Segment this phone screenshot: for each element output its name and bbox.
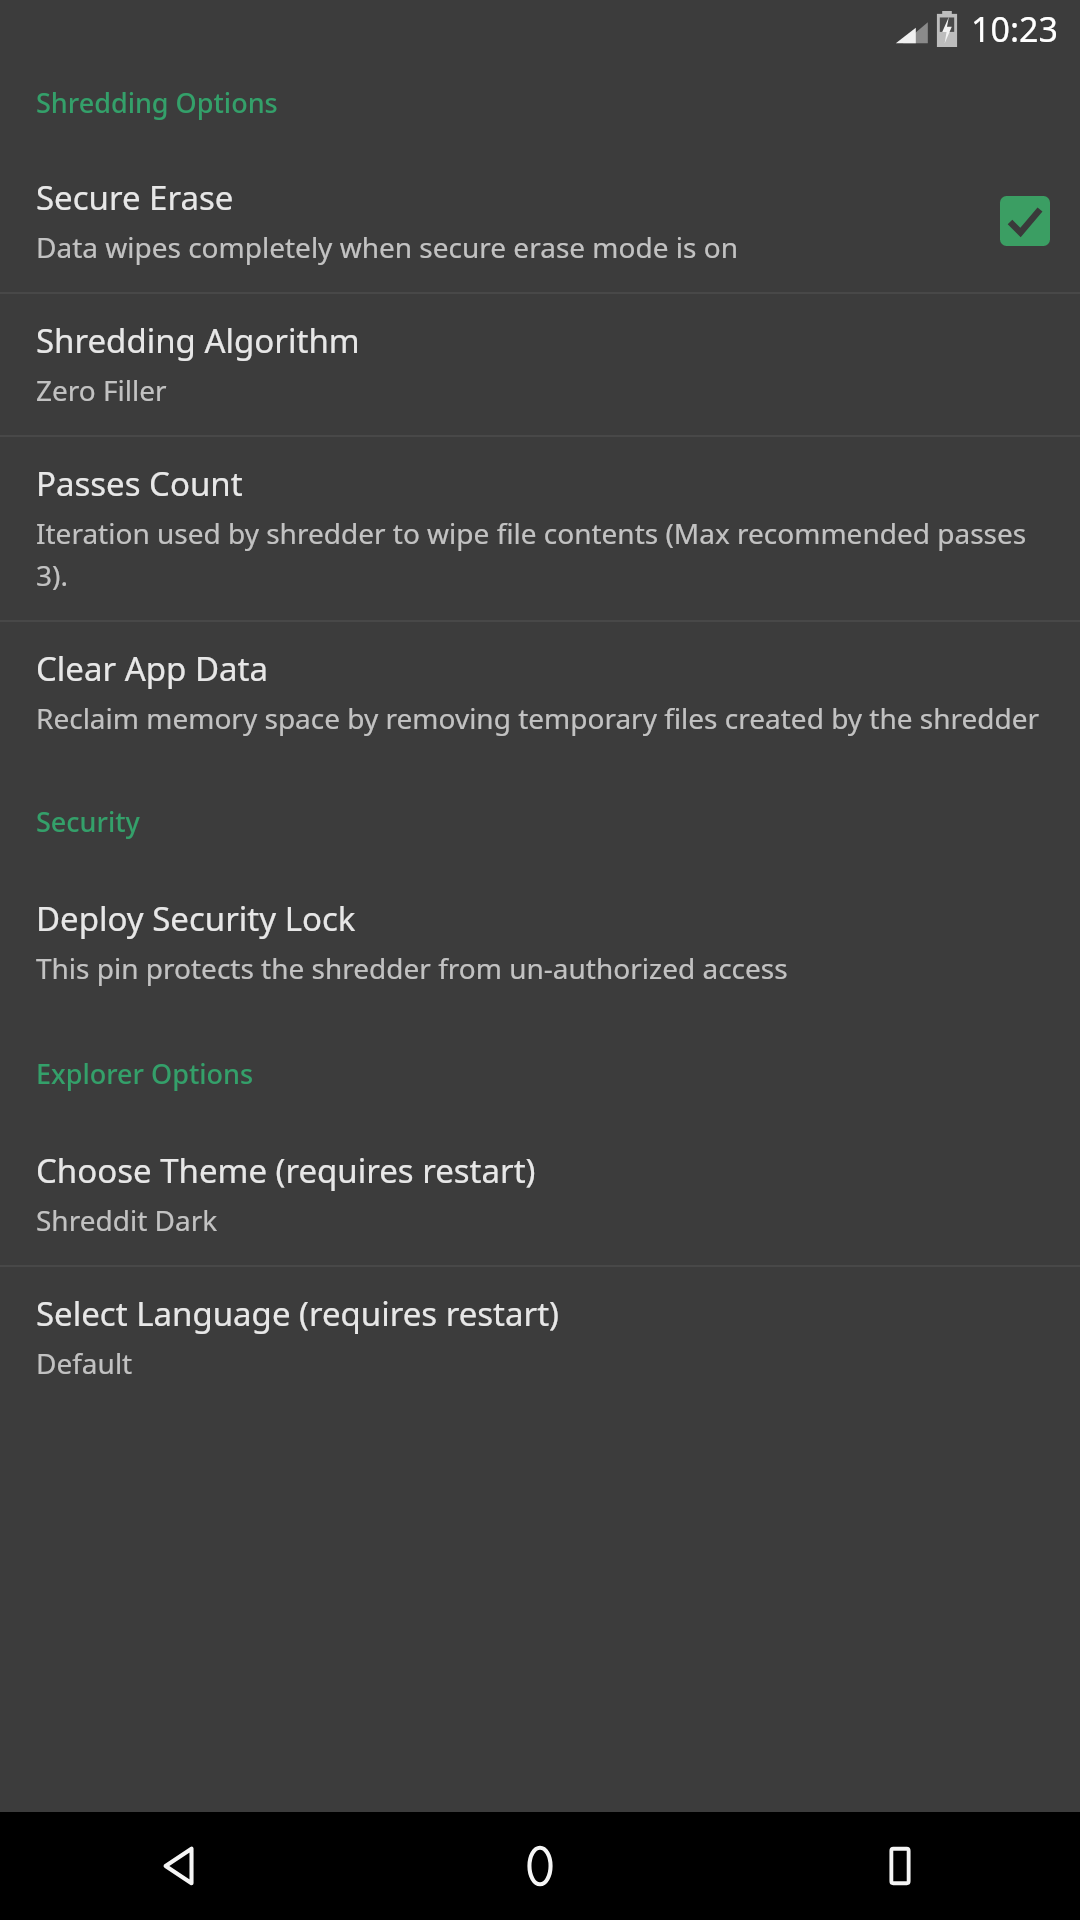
staticText: Zero Filler	[36, 371, 167, 409]
staticText: Data wipes completely when secure erase …	[36, 228, 738, 266]
button[interactable]: Recents	[720, 1812, 1080, 1920]
button[interactable]: Shredding Algorithm	[0, 294, 1080, 435]
button[interactable]: Choose Theme (requires restart)	[0, 1124, 1080, 1265]
staticText: Security	[36, 803, 1056, 840]
staticText: Clear App Data	[36, 646, 268, 691]
staticText: 10:23	[971, 6, 1058, 52]
staticText: Explorer Options	[36, 1055, 1056, 1092]
staticText: Reclaim memory space by removing tempora…	[36, 699, 1040, 737]
staticText: Shredding Options	[36, 84, 1056, 121]
button[interactable]: Secure Erase	[0, 151, 1080, 292]
button[interactable]: Clear App Data	[0, 622, 1080, 763]
staticText: Choose Theme (requires restart)	[36, 1148, 536, 1193]
button[interactable]: Deploy Security Lock	[0, 872, 1080, 1013]
staticText: Secure Erase	[36, 175, 234, 220]
staticText: Iteration used by shredder to wipe file …	[36, 514, 1050, 594]
button[interactable]: Secure Erase checkbox	[1000, 196, 1050, 246]
button[interactable]: Select Language (requires restart)	[0, 1267, 1080, 1408]
staticText: Default	[36, 1344, 133, 1382]
staticText: Passes Count	[36, 461, 243, 506]
staticText: Shredding Algorithm	[36, 318, 360, 363]
staticText: Select Language (requires restart)	[36, 1291, 559, 1336]
button[interactable]: Home	[360, 1812, 720, 1920]
staticText: Shreddit Dark	[36, 1201, 218, 1239]
button[interactable]: Passes Count	[0, 437, 1080, 620]
staticText: Deploy Security Lock	[36, 896, 356, 941]
button[interactable]: Back	[0, 1812, 360, 1920]
staticText: This pin protects the shredder from un-a…	[36, 949, 788, 987]
